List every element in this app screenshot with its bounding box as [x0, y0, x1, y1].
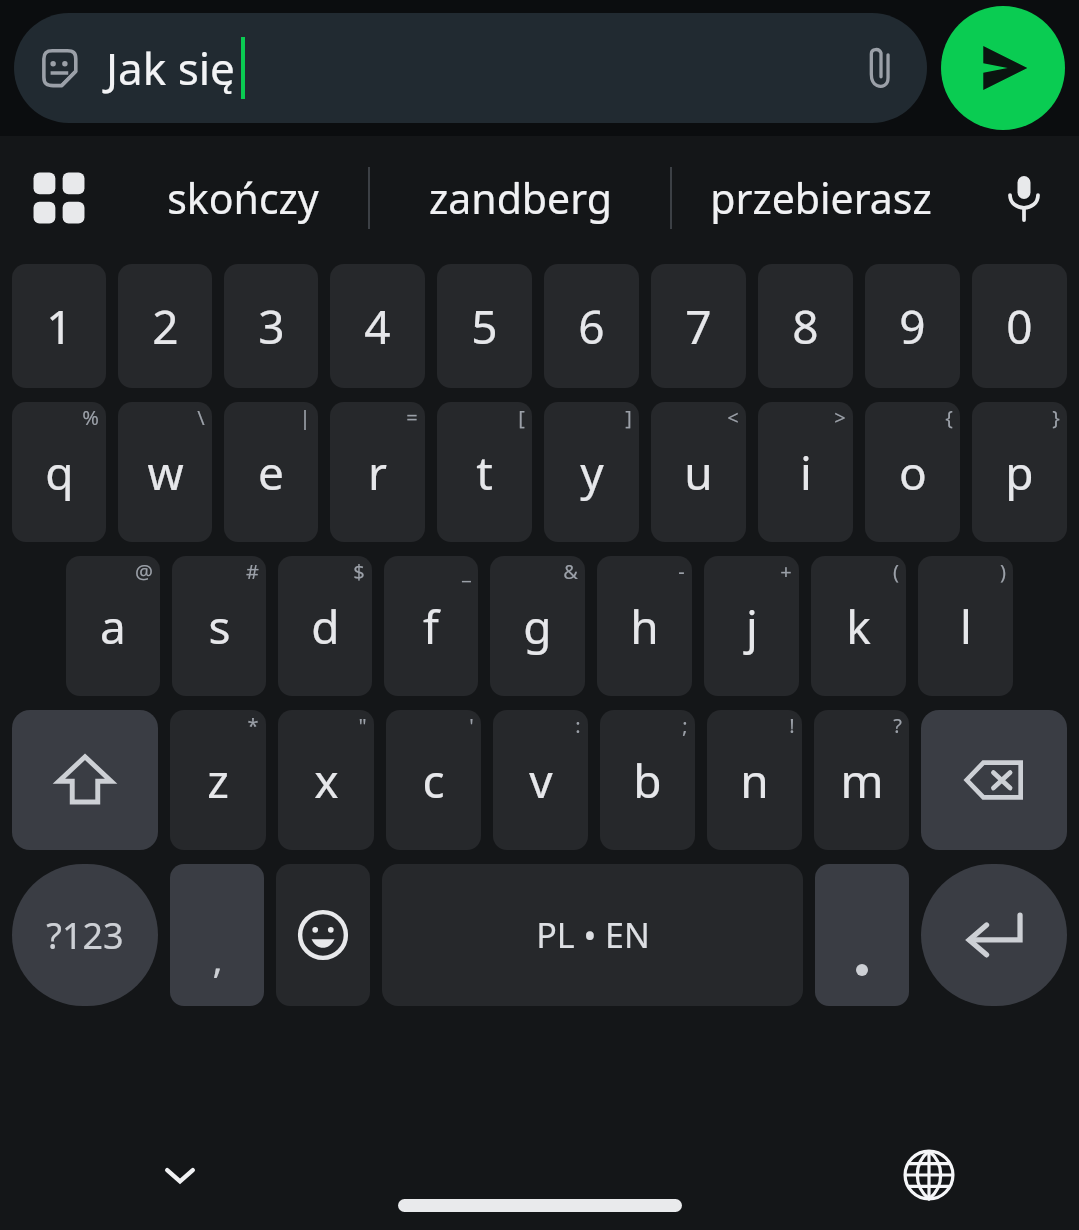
- staticText: &: [563, 558, 578, 585]
- button[interactable]: Emoji: [276, 864, 370, 1006]
- button[interactable]: Shift: [12, 710, 158, 850]
- button[interactable]: Enter: [921, 864, 1067, 1006]
- button[interactable]: g: [490, 556, 585, 696]
- button[interactable]: m: [814, 710, 909, 850]
- staticText: e: [258, 441, 284, 504]
- button[interactable]: Stickers: [14, 13, 927, 123]
- staticText: p: [1005, 441, 1034, 504]
- button[interactable]: y: [544, 402, 639, 542]
- staticText: #: [246, 558, 259, 585]
- staticText: %: [82, 404, 99, 431]
- button[interactable]: w: [118, 402, 212, 542]
- button[interactable]: e: [224, 402, 318, 542]
- staticText: ,: [212, 932, 223, 984]
- button[interactable]: b: [600, 710, 695, 850]
- button[interactable]: o: [865, 402, 960, 542]
- staticText: }: [1052, 404, 1060, 431]
- staticText: ?: [893, 712, 902, 739]
- staticText: v: [529, 749, 553, 812]
- staticText: c: [422, 749, 445, 812]
- button[interactable]: l: [918, 556, 1013, 696]
- button[interactable]: d: [278, 556, 372, 696]
- staticText: u: [684, 441, 713, 504]
- button[interactable]: z: [170, 710, 266, 850]
- staticText: skończy: [167, 170, 319, 226]
- button[interactable]: Backspace: [921, 710, 1067, 850]
- button[interactable]: k: [811, 556, 906, 696]
- staticText: t: [476, 441, 493, 504]
- staticText: 3: [258, 295, 285, 358]
- button[interactable]: j: [704, 556, 799, 696]
- staticText: {: [945, 404, 953, 431]
- staticText: !: [789, 712, 795, 739]
- button[interactable]: przebierasz: [672, 136, 969, 260]
- button[interactable]: 7: [651, 264, 746, 388]
- button[interactable]: r: [330, 402, 425, 542]
- staticText: w: [147, 441, 184, 504]
- button[interactable]: 3: [224, 264, 318, 388]
- button[interactable]: Stickers: [36, 45, 82, 91]
- button[interactable]: x: [278, 710, 374, 850]
- staticText: :: [575, 712, 581, 739]
- staticText: m: [840, 749, 884, 812]
- button[interactable]: Send: [941, 6, 1065, 130]
- button[interactable]: PL • EN: [382, 864, 803, 1006]
- staticText: [: [518, 404, 525, 431]
- button[interactable]: f: [384, 556, 478, 696]
- staticText: ?123: [46, 911, 124, 960]
- button[interactable]: Period: [815, 864, 909, 1006]
- staticText: |: [299, 404, 311, 431]
- staticText: y: [580, 441, 604, 504]
- button[interactable]: q: [12, 402, 106, 542]
- staticText: q: [45, 441, 74, 504]
- button[interactable]: ?123: [12, 864, 158, 1006]
- staticText: b: [633, 749, 662, 812]
- staticText: 0: [1006, 295, 1033, 358]
- staticText: PL • EN: [536, 912, 650, 958]
- staticText: 6: [578, 295, 605, 358]
- button[interactable]: 1: [12, 264, 106, 388]
- button[interactable]: 4: [330, 264, 425, 388]
- button[interactable]: skończy: [118, 136, 368, 260]
- button[interactable]: h: [597, 556, 692, 696]
- staticText: _: [462, 558, 471, 585]
- button[interactable]: v: [493, 710, 588, 850]
- staticText: $: [353, 558, 365, 585]
- staticText: ;: [682, 712, 688, 739]
- button[interactable]: Voice input: [969, 136, 1079, 260]
- staticText: >: [834, 404, 846, 431]
- staticText: ': [469, 712, 474, 739]
- button[interactable]: 0: [972, 264, 1067, 388]
- staticText: przebierasz: [710, 170, 932, 226]
- button[interactable]: 2: [118, 264, 212, 388]
- staticText: =: [406, 404, 418, 431]
- button[interactable]: Comma: [170, 864, 264, 1006]
- button[interactable]: 6: [544, 264, 639, 388]
- button[interactable]: t: [437, 402, 532, 542]
- button[interactable]: Change language: [889, 1135, 969, 1215]
- button[interactable]: u: [651, 402, 746, 542]
- button[interactable]: Toolbar: [0, 136, 118, 260]
- button[interactable]: a: [66, 556, 160, 696]
- button[interactable]: 9: [865, 264, 960, 388]
- button[interactable]: n: [707, 710, 802, 850]
- staticText: o: [899, 441, 927, 504]
- button[interactable]: 5: [437, 264, 532, 388]
- staticText: s: [208, 595, 231, 658]
- button[interactable]: p: [972, 402, 1067, 542]
- staticText: n: [740, 749, 769, 812]
- staticText: z: [207, 749, 229, 812]
- staticText: i: [800, 441, 812, 504]
- staticText: h: [630, 595, 659, 658]
- staticText: g: [523, 595, 552, 658]
- button[interactable]: zandberg: [370, 136, 670, 260]
- staticText: d: [311, 595, 340, 658]
- button[interactable]: i: [758, 402, 853, 542]
- staticText: 8: [792, 295, 819, 358]
- button[interactable]: c: [386, 710, 481, 850]
- button[interactable]: s: [172, 556, 266, 696]
- staticText: k: [846, 595, 871, 658]
- button[interactable]: 8: [758, 264, 853, 388]
- button[interactable]: Hide keyboard: [140, 1135, 220, 1215]
- button[interactable]: Attach: [857, 44, 905, 92]
